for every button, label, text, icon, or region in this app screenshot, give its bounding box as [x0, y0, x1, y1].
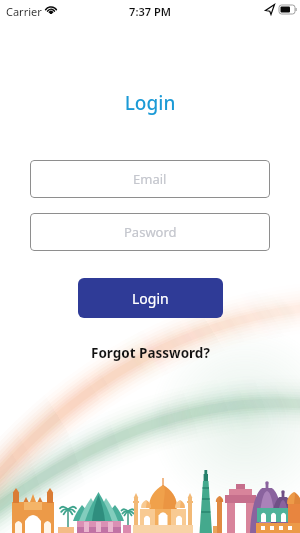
staticText: Pasword: [124, 223, 177, 241]
staticText: Login: [0, 90, 300, 116]
staticText: Carrier: [6, 4, 42, 19]
button[interactable]: Login: [78, 278, 223, 318]
staticText: Login: [132, 289, 169, 308]
staticText: 7:37 PM: [0, 4, 300, 19]
button[interactable]: Email: [30, 160, 270, 198]
button[interactable]: Forgot Password?: [0, 344, 300, 362]
staticText: Email: [133, 170, 167, 188]
button[interactable]: Pasword: [30, 213, 270, 251]
staticText: Forgot Password?: [91, 344, 210, 362]
